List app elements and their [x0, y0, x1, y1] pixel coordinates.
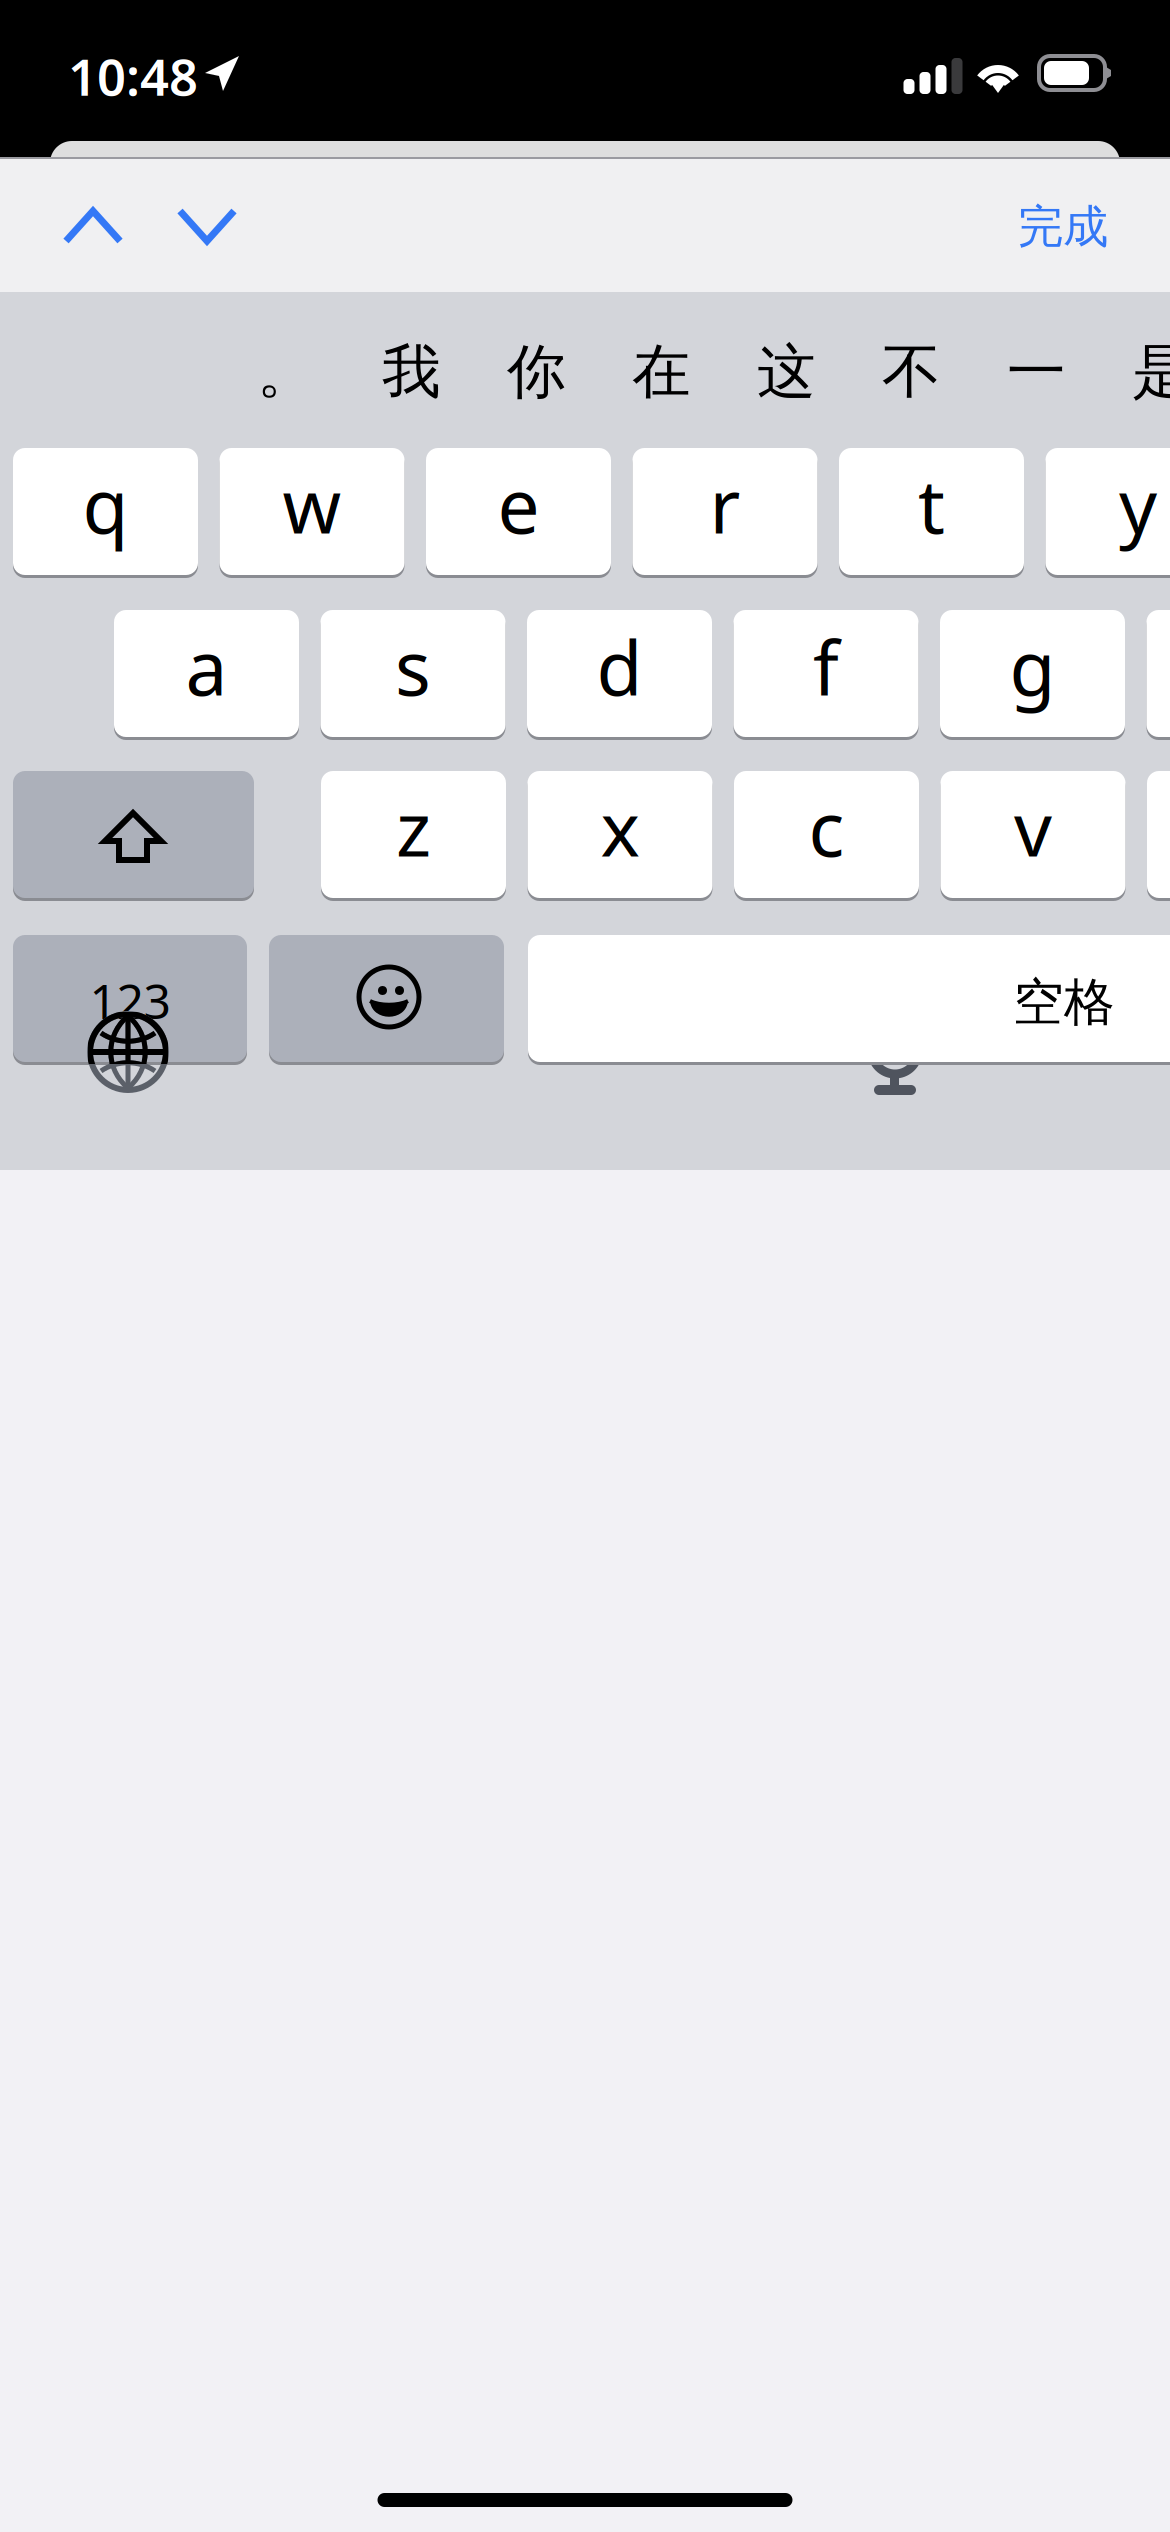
button[interactable]: 空格	[528, 932, 1170, 1065]
button[interactable]: g	[940, 607, 1125, 740]
staticText: w	[282, 455, 341, 554]
button[interactable]: 123	[13, 932, 247, 1065]
button[interactable]: w	[219, 445, 404, 578]
staticText: c	[808, 778, 844, 877]
staticText: 一	[1007, 336, 1066, 408]
staticText: q	[82, 455, 128, 554]
button[interactable]: a	[114, 607, 299, 740]
staticText: 是	[1132, 336, 1170, 408]
staticText: r	[709, 455, 740, 554]
staticText: 完成	[1018, 199, 1108, 255]
button[interactable]: x	[527, 768, 712, 901]
button[interactable]: r	[632, 445, 817, 578]
button[interactable]: 完成	[988, 177, 1138, 277]
staticText: d	[596, 617, 642, 716]
button[interactable]: 你	[474, 317, 599, 427]
staticText: v	[1014, 778, 1052, 877]
button[interactable]: y	[1045, 445, 1170, 578]
button[interactable]: 不	[849, 317, 974, 427]
button[interactable]: t	[839, 445, 1024, 578]
button[interactable]: z	[321, 768, 506, 901]
button[interactable]: 是	[1099, 317, 1170, 427]
staticText: g	[1009, 617, 1055, 716]
button[interactable]: c	[734, 768, 919, 901]
button[interactable]: 在	[599, 317, 724, 427]
staticText: a	[185, 617, 227, 716]
staticText: 123	[89, 969, 170, 1032]
button[interactable]: 我	[349, 317, 474, 427]
button[interactable]: d	[527, 607, 712, 740]
staticText: 在	[632, 336, 691, 408]
button[interactable]: s	[320, 607, 505, 740]
button[interactable]: e	[426, 445, 611, 578]
button[interactable]: f	[733, 607, 918, 740]
staticText: 这	[757, 336, 816, 408]
button[interactable]: 这	[724, 317, 849, 427]
staticText: 。	[257, 336, 316, 408]
staticText: t	[918, 455, 945, 554]
staticText: 空格	[1013, 971, 1115, 1034]
staticText: x	[600, 778, 639, 877]
button[interactable]: Previous field	[38, 181, 148, 271]
staticText: f	[813, 617, 839, 716]
button[interactable]: Next field	[152, 181, 262, 271]
staticText: y	[1119, 455, 1157, 554]
button[interactable]: v	[940, 768, 1125, 901]
button[interactable]	[269, 932, 504, 1065]
button[interactable]	[13, 768, 254, 901]
staticText: 你	[507, 336, 566, 408]
staticText: 我	[382, 336, 441, 408]
button[interactable]: 一	[974, 317, 1099, 427]
button[interactable]	[1147, 768, 1170, 901]
staticText: s	[395, 617, 431, 716]
staticText: 10:48	[68, 42, 198, 110]
button[interactable]: 。	[224, 317, 349, 427]
button[interactable]: q	[13, 445, 198, 578]
button[interactable]	[1146, 607, 1170, 740]
staticText: e	[497, 455, 539, 554]
staticText: 不	[882, 336, 941, 408]
staticText: z	[396, 778, 431, 877]
